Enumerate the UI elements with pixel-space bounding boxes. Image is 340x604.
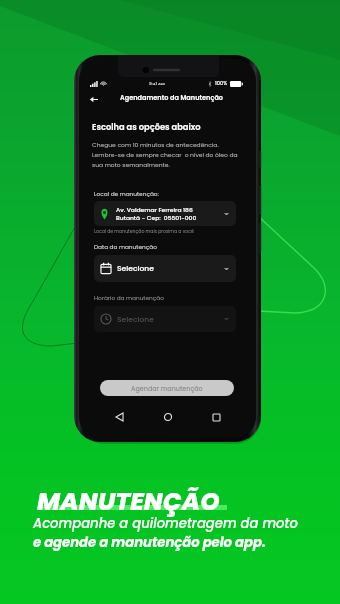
staticText: Acompanhe a quilometragem da moto	[33, 514, 298, 532]
staticText: 100%	[215, 80, 228, 87]
staticText: Horário da manutenção	[94, 294, 164, 302]
staticText: Agendar manutenção	[131, 384, 203, 393]
button[interactable]: Voltar	[87, 92, 101, 106]
staticText: Selecione	[117, 314, 154, 325]
staticText: Av. Valdemar Ferreira 186	[116, 206, 193, 214]
staticText: Agendamento da Manutenção	[120, 93, 224, 102]
staticText: Selecione	[117, 263, 154, 274]
button[interactable]: Recentes	[207, 408, 225, 426]
staticText: Butantã - Cep: 05501-000	[116, 214, 197, 222]
button[interactable]: Voltar	[110, 408, 128, 426]
staticText: MANUTENÇÃO	[37, 484, 220, 518]
staticText: Local de manutenção mais proxima a você	[94, 228, 194, 234]
staticText: Escolha as opções abaixo	[92, 121, 201, 133]
button[interactable]: Agendar manutenção	[100, 380, 234, 396]
staticText: Local de manutenção:	[94, 190, 159, 198]
button[interactable]: Av. Valdemar Ferreira 186	[94, 201, 236, 226]
staticText: Data da manutenção	[94, 243, 157, 251]
button[interactable]: Selecione	[94, 255, 236, 282]
staticText: 9:41 AM	[149, 81, 165, 87]
staticText: Chegue com 10 minutos de antecedência. L…	[92, 141, 238, 169]
button[interactable]: Início	[159, 408, 177, 426]
button[interactable]: Selecione	[94, 306, 236, 332]
staticText: e agende a manutenção pelo app.	[33, 533, 266, 551]
